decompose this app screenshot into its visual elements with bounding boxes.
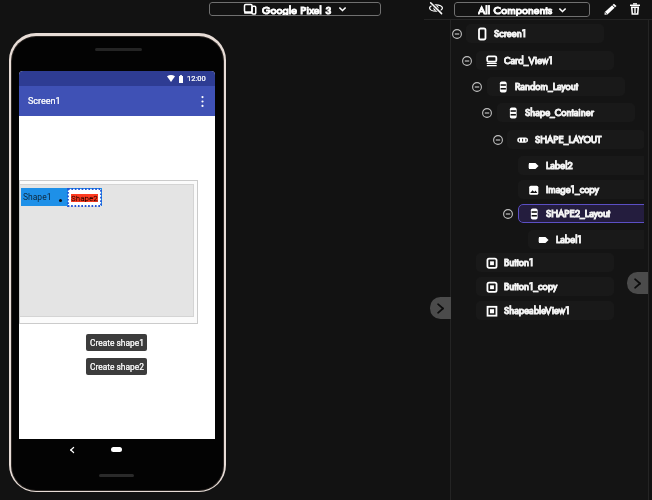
staticText: Label2 [546, 159, 573, 173]
staticText: Screen1 [494, 27, 526, 41]
button[interactable]: All Components [454, 2, 590, 17]
staticText: Image1_copy [546, 183, 599, 197]
button[interactable]: Collapse Card_View1 [461, 55, 472, 66]
button[interactable]: Edit [604, 3, 617, 15]
staticText: Card_View1 [504, 54, 553, 68]
button[interactable]: Create shape1 [86, 334, 147, 351]
button[interactable]: Card_View1 [476, 51, 614, 70]
staticText: Create shape2 [90, 362, 144, 372]
staticText: Label2 [546, 159, 573, 173]
staticText: Screen1 [28, 96, 61, 107]
button[interactable]: Back [67, 445, 77, 455]
staticText: All Components [478, 2, 553, 17]
staticText: Google Pixel 3 [262, 2, 332, 16]
staticText: Button1 [504, 256, 534, 270]
staticText: Shape2 [71, 194, 98, 202]
staticText: ShapeableView1 [504, 304, 570, 318]
staticText: ShapeableView1 [504, 304, 570, 318]
button[interactable]: Screen1 [466, 24, 604, 43]
button[interactable]: ShapeableView1 [476, 301, 614, 320]
button[interactable]: Expand left panel [430, 297, 451, 319]
button[interactable]: Label1 [528, 230, 644, 249]
button[interactable]: Label2 [518, 156, 644, 175]
button[interactable]: Toggle visibility [428, 0, 444, 16]
button[interactable]: Create shape2 [86, 358, 147, 375]
staticText: Shape1 [23, 192, 52, 202]
staticText: Screen1 [494, 27, 526, 41]
button[interactable]: Image1_copy [518, 180, 644, 199]
staticText: Random_Layout [515, 80, 578, 94]
staticText: All Components [478, 2, 553, 17]
staticText: SHAPE2_Layout [546, 207, 611, 221]
button[interactable]: Button1_copy [476, 277, 614, 296]
button[interactable]: Button1 [476, 253, 614, 272]
button[interactable]: Shape1 [21, 188, 102, 206]
staticText: Button1_copy [504, 280, 558, 294]
staticText: Shape_Container [525, 106, 594, 120]
button[interactable]: Home [111, 447, 122, 452]
staticText: Label1 [556, 233, 582, 247]
staticText: Button1 [504, 256, 534, 270]
button[interactable]: Collapse SHAPE2_Layout [502, 208, 513, 219]
button[interactable]: Delete [630, 3, 640, 15]
staticText: Shape_Container [525, 106, 594, 120]
staticText: Card_View1 [504, 54, 553, 68]
staticText: Random_Layout [515, 80, 578, 94]
staticText: 12:00 [187, 74, 206, 83]
button[interactable]: Random_Layout [487, 77, 625, 96]
button[interactable]: Collapse Screen1 [451, 28, 462, 39]
button[interactable]: Google Pixel 3 [209, 2, 381, 16]
button[interactable]: SHAPE2_Layout [518, 204, 644, 223]
staticText: Label1 [556, 233, 582, 247]
staticText: SHAPE_LAYOUT [535, 133, 602, 147]
staticText: Create shape1 [90, 338, 144, 348]
button[interactable]: More options [195, 94, 209, 108]
button[interactable]: Expand right panel [627, 272, 648, 294]
staticText: Google Pixel 3 [262, 2, 332, 16]
staticText: SHAPE_LAYOUT [535, 133, 602, 147]
button[interactable]: SHAPE_LAYOUT [507, 130, 644, 149]
button[interactable]: Shape_Container [497, 103, 635, 122]
button[interactable]: Shape2 [68, 189, 101, 206]
staticText: SHAPE2_Layout [546, 207, 611, 221]
button[interactable]: Collapse Random_Layout [471, 81, 482, 92]
button[interactable]: Collapse Shape_Container [481, 107, 492, 118]
staticText: Button1_copy [504, 280, 558, 294]
button[interactable]: Collapse SHAPE_LAYOUT [492, 134, 503, 145]
staticText: Image1_copy [546, 183, 599, 197]
